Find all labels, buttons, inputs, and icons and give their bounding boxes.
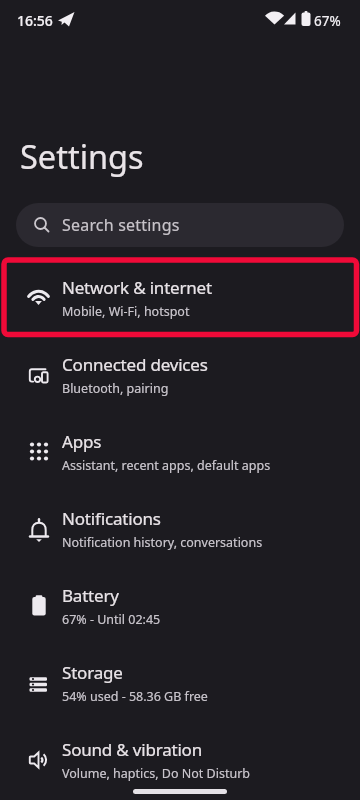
staticText: Settings (20, 134, 144, 178)
staticText: 67% (314, 12, 341, 30)
staticText: Notification history, conversations (62, 534, 263, 551)
staticText: Battery (62, 584, 119, 607)
button[interactable]: Notifications (0, 490, 360, 567)
staticText: 67% - Until 02:45 (62, 611, 161, 628)
staticText: Notifications (62, 507, 161, 530)
staticText: Mobile, Wi-Fi, hotspot (62, 303, 190, 320)
staticText: Sound & vibration (62, 738, 202, 761)
button[interactable]: Network & internet (0, 259, 360, 336)
staticText: Bluetooth, pairing (62, 380, 169, 397)
staticText: Search settings (62, 214, 180, 236)
button[interactable]: Search settings (16, 203, 344, 247)
staticText: Assistant, recent apps, default apps (62, 457, 271, 474)
staticText: Storage (62, 661, 123, 684)
button[interactable]: Sound & vibration (0, 721, 360, 798)
staticText: Apps (62, 430, 102, 453)
staticText: Network & internet (62, 276, 212, 299)
button[interactable]: Connected devices (0, 336, 360, 413)
staticText: Connected devices (62, 353, 208, 376)
button[interactable]: Storage (0, 644, 360, 721)
staticText: 54% used - 58.36 GB free (62, 688, 208, 705)
button[interactable]: Battery (0, 567, 360, 644)
staticText: 16:56 (17, 11, 53, 30)
button[interactable]: Apps (0, 413, 360, 490)
staticText: Volume, haptics, Do Not Disturb (62, 765, 251, 782)
